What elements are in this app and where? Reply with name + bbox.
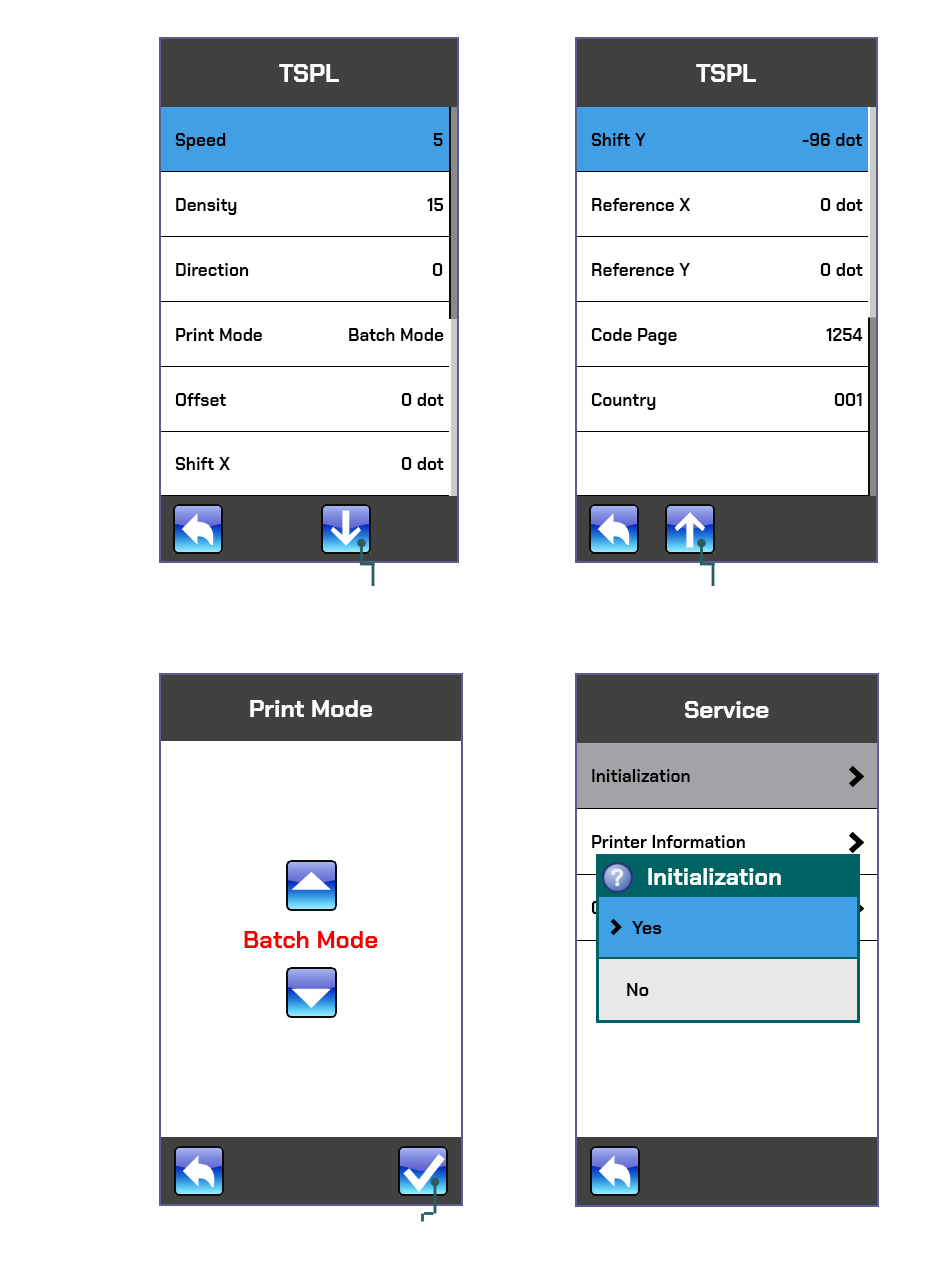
staticText: No <box>626 978 650 1001</box>
button[interactable]: Previous option <box>286 860 337 911</box>
button[interactable]: Back <box>173 504 223 554</box>
button[interactable]: Next page <box>321 504 371 554</box>
staticText: TSPL <box>279 57 340 89</box>
staticText: 0 dot <box>820 194 863 216</box>
button[interactable]: Printer Information <box>577 809 877 875</box>
staticText: Code Page <box>591 324 678 346</box>
staticText: Shift X <box>175 453 231 475</box>
staticText: Offset <box>175 389 227 411</box>
staticText: Printer Information <box>591 831 746 853</box>
button[interactable]: Back <box>174 1146 224 1196</box>
button[interactable]: Speed <box>161 107 449 172</box>
staticText: Batch Mode <box>243 924 379 955</box>
button[interactable]: Print Mode <box>161 302 449 367</box>
button[interactable]: Confirm <box>398 1146 448 1196</box>
button[interactable]: Yes <box>610 897 857 957</box>
staticText: Print Mode <box>175 324 263 346</box>
staticText: Country <box>591 389 657 411</box>
staticText: ? <box>611 863 624 893</box>
staticText: Initialization <box>647 862 782 892</box>
button[interactable]: Reference Y <box>577 237 868 302</box>
staticText: -96 dot <box>802 129 863 151</box>
staticText: Density <box>175 194 238 216</box>
staticText: 5 <box>433 129 444 151</box>
staticText: Reference Y <box>591 259 691 281</box>
staticText: 0 dot <box>820 259 863 281</box>
staticText: 0 <box>432 259 444 281</box>
staticText: Service <box>684 694 770 725</box>
staticText: Print Mode <box>249 693 373 724</box>
staticText: TSPL <box>696 57 757 89</box>
button[interactable]: Offset <box>161 367 449 432</box>
button[interactable]: Config <box>577 875 877 941</box>
button[interactable]: Density <box>161 172 449 237</box>
button[interactable]: Code Page <box>577 302 868 367</box>
button[interactable]: Next option <box>286 967 337 1018</box>
button[interactable]: No <box>626 959 857 1020</box>
staticText: 001 <box>834 389 863 411</box>
staticText: Direction <box>175 259 250 281</box>
button[interactable]: Back <box>589 504 639 554</box>
button[interactable]: Direction <box>161 237 449 302</box>
staticText: 1254 <box>826 324 863 346</box>
button[interactable]: Reference X <box>577 172 868 237</box>
button[interactable]: Previous page <box>665 504 715 554</box>
staticText: Batch Mode <box>348 324 444 346</box>
button[interactable]: Shift X <box>161 432 449 496</box>
staticText: Reference X <box>591 194 691 216</box>
staticText: 0 dot <box>401 453 444 475</box>
staticText: 15 <box>427 194 444 216</box>
button[interactable] <box>577 432 868 496</box>
staticText: Initialization <box>591 765 691 787</box>
button[interactable]: Back <box>590 1146 640 1196</box>
staticText: Speed <box>175 129 227 151</box>
staticText: Shift Y <box>591 129 646 151</box>
button[interactable]: Country <box>577 367 868 432</box>
staticText: Config <box>591 897 644 919</box>
staticText: 0 dot <box>401 389 444 411</box>
button[interactable]: Initialization <box>577 743 877 809</box>
staticText: Yes <box>632 916 662 939</box>
button[interactable]: Shift Y <box>577 107 868 172</box>
